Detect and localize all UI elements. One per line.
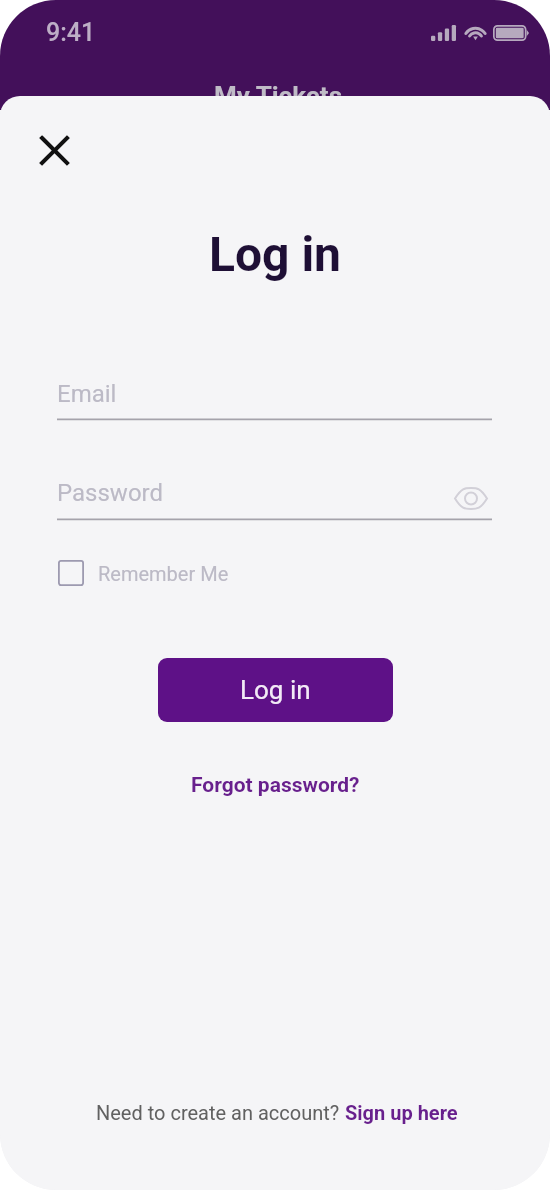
button[interactable]: Remember Me: [58, 560, 229, 586]
staticText: Forgot password?: [191, 773, 360, 798]
staticText: Sign up here: [345, 1101, 458, 1124]
button[interactable]: Sign up here: [345, 1101, 458, 1124]
button[interactable]: Log in: [158, 658, 393, 722]
staticText: Log in: [240, 675, 311, 705]
staticText: Log in: [209, 226, 342, 282]
staticText: Email: [57, 380, 117, 408]
button[interactable]: Show password: [449, 476, 493, 520]
staticText: My Tickets: [214, 81, 342, 111]
button[interactable]: Close: [30, 126, 78, 174]
staticText: 9:41: [46, 18, 96, 47]
staticText: Password: [57, 479, 164, 507]
button[interactable]: Email: [57, 370, 492, 422]
button[interactable]: Forgot password?: [191, 773, 360, 798]
staticText: Remember Me: [98, 562, 229, 585]
staticText: Need to create an account?: [96, 1101, 345, 1124]
button[interactable]: Password: [57, 470, 492, 522]
